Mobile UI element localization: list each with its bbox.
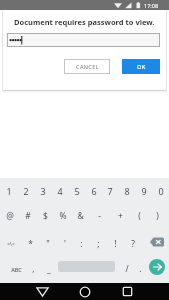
button[interactable]: /: [120, 256, 134, 282]
button[interactable]: #: [19, 204, 37, 228]
button[interactable]: [115, 283, 139, 300]
button[interactable]: ,: [27, 256, 40, 282]
button[interactable]: 1: [0, 179, 17, 203]
staticText: .: [139, 263, 142, 275]
button[interactable]: &: [71, 204, 89, 228]
staticText: CANCEL: [76, 63, 99, 70]
button[interactable]: ): [148, 204, 166, 228]
button[interactable]: .: [133, 256, 147, 282]
button[interactable]: [30, 283, 54, 300]
button[interactable]: ABC: [2, 256, 30, 282]
staticText: Document requires password to view.: [14, 17, 155, 27]
button[interactable]: +: [111, 204, 129, 228]
staticText: OK: [137, 63, 146, 70]
button[interactable]: CANCEL: [64, 59, 110, 74]
staticText: _: [47, 263, 51, 275]
button[interactable]: [7, 33, 160, 47]
button[interactable]: 7: [101, 179, 118, 203]
staticText: ): [156, 210, 159, 222]
staticText: 4: [57, 185, 63, 197]
staticText: ': [64, 238, 66, 250]
button[interactable]: [145, 230, 169, 254]
button[interactable]: 2: [17, 179, 34, 203]
staticText: 9: [141, 185, 147, 197]
button[interactable]: 8: [118, 179, 135, 203]
staticText: (: [138, 210, 141, 222]
staticText: ": [46, 238, 50, 250]
button[interactable]: (: [130, 204, 148, 228]
staticText: =\<: [7, 241, 15, 248]
staticText: @: [6, 210, 14, 222]
button[interactable]: !: [107, 232, 124, 256]
staticText: /: [125, 263, 129, 275]
button[interactable]: -: [90, 204, 108, 228]
staticText: 3: [40, 185, 46, 197]
staticText: 8: [124, 185, 130, 197]
button[interactable]: 9: [135, 179, 152, 203]
button[interactable]: ": [39, 232, 56, 256]
staticText: ABC: [11, 266, 22, 273]
button[interactable]: 0: [152, 179, 169, 203]
staticText: $: [43, 210, 48, 222]
button[interactable]: _: [42, 256, 56, 282]
button[interactable]: OK: [122, 59, 160, 74]
button[interactable]: 4: [51, 179, 68, 203]
staticText: :: [80, 238, 83, 250]
staticText: 1: [6, 185, 12, 197]
staticText: 0: [158, 185, 164, 197]
button[interactable]: :: [73, 232, 90, 256]
staticText: 17:08: [144, 2, 159, 9]
button[interactable]: @: [1, 204, 19, 228]
staticText: &: [77, 210, 84, 222]
button[interactable]: ?: [124, 232, 141, 256]
button[interactable]: 5: [68, 179, 85, 203]
button[interactable]: %: [54, 204, 72, 228]
staticText: #: [25, 210, 31, 222]
button[interactable]: ': [56, 232, 73, 256]
button[interactable]: =\<: [2, 232, 20, 256]
button[interactable]: *: [22, 232, 39, 256]
button[interactable]: [149, 259, 165, 275]
staticText: !: [114, 238, 117, 250]
staticText: ,: [32, 263, 35, 275]
staticText: ?: [131, 238, 135, 250]
staticText: ;: [97, 238, 100, 250]
staticText: 6: [91, 185, 97, 197]
staticText: -: [98, 210, 101, 222]
staticText: 5: [74, 185, 80, 197]
staticText: *: [28, 238, 33, 250]
button[interactable]: $: [36, 204, 54, 228]
button[interactable]: [73, 283, 97, 300]
staticText: 2: [23, 185, 29, 197]
button[interactable]: 3: [34, 179, 51, 203]
button[interactable]: ;: [90, 232, 107, 256]
staticText: +: [118, 210, 123, 222]
staticText: %: [59, 210, 67, 222]
button[interactable]: 6: [85, 179, 102, 203]
staticText: 7: [107, 185, 113, 197]
